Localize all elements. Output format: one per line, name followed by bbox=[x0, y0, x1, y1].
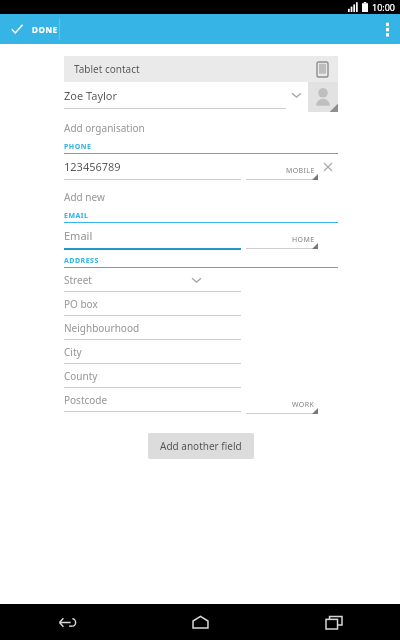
button[interactable]: Add another field bbox=[148, 433, 254, 459]
button[interactable]: Contact photo bbox=[308, 82, 338, 112]
button[interactable]: County bbox=[64, 364, 241, 387]
staticText: Street bbox=[64, 273, 92, 287]
staticText: PO box bbox=[64, 297, 98, 311]
staticText: ADDRESS bbox=[64, 256, 99, 266]
button[interactable]: Street bbox=[64, 268, 241, 291]
staticText: Add organisation bbox=[64, 121, 145, 135]
button[interactable]: Postcode bbox=[64, 388, 241, 411]
staticText: PHONE bbox=[64, 142, 92, 152]
button[interactable]: Email bbox=[64, 223, 241, 248]
button[interactable]: More options bbox=[375, 18, 400, 40]
staticText: Neighbourhood bbox=[64, 321, 140, 335]
staticText: 123456789 bbox=[64, 159, 121, 174]
staticText: City bbox=[64, 345, 82, 359]
button[interactable]: DONE bbox=[0, 18, 72, 40]
staticText: County bbox=[64, 369, 98, 383]
staticText: EMAIL bbox=[64, 211, 89, 221]
button[interactable]: Recent apps bbox=[267, 604, 400, 640]
button[interactable]: MOBILE bbox=[246, 154, 318, 179]
staticText: Zoe Taylor bbox=[64, 88, 118, 103]
button[interactable]: Tablet contact bbox=[64, 56, 338, 82]
button[interactable]: Expand name bbox=[286, 82, 306, 108]
button[interactable]: HOME bbox=[246, 223, 318, 248]
staticText: HOME bbox=[292, 235, 315, 245]
button[interactable]: Zoe Taylor bbox=[64, 82, 286, 108]
button[interactable]: Home bbox=[134, 604, 267, 640]
button[interactable]: Neighbourhood bbox=[64, 316, 241, 339]
staticText: 10:00 bbox=[372, 1, 396, 13]
button[interactable]: City bbox=[64, 340, 241, 363]
button[interactable]: PO box bbox=[64, 292, 241, 315]
staticText: Tablet contact bbox=[74, 62, 140, 76]
staticText: WORK bbox=[292, 400, 315, 410]
button[interactable]: Add new bbox=[64, 185, 338, 209]
button[interactable]: Back bbox=[0, 604, 134, 640]
button[interactable]: Add organisation bbox=[64, 116, 338, 140]
button[interactable]: WORK bbox=[246, 388, 318, 413]
staticText: Email bbox=[64, 228, 93, 243]
staticText: Add another field bbox=[160, 439, 242, 453]
button[interactable]: Delete phone bbox=[318, 154, 338, 179]
staticText: DONE bbox=[32, 24, 58, 35]
staticText: Postcode bbox=[64, 393, 108, 407]
staticText: Add new bbox=[64, 190, 105, 204]
button[interactable]: 123456789 bbox=[64, 154, 241, 179]
staticText: MOBILE bbox=[286, 166, 315, 176]
